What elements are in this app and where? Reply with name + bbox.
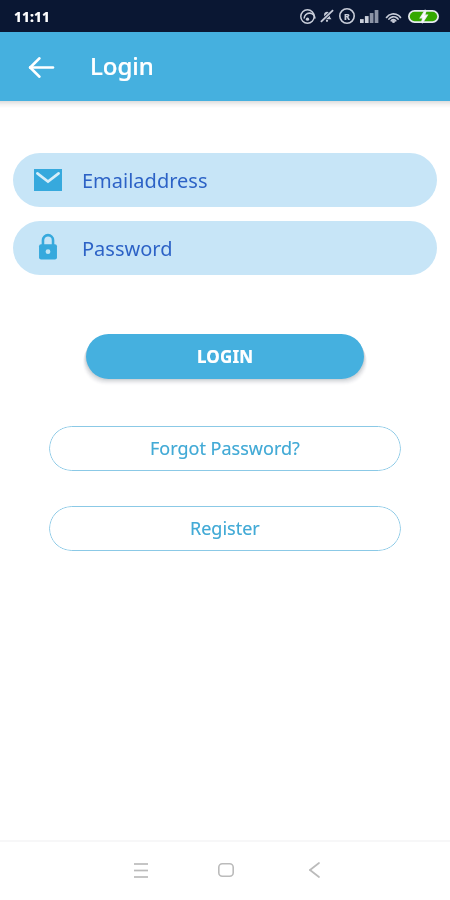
- staticText: Forgot Password?: [150, 436, 300, 461]
- button[interactable]: Home: [205, 849, 247, 891]
- button[interactable]: LOGIN: [86, 334, 364, 379]
- staticText: R: [344, 10, 350, 22]
- button[interactable]: Forgot Password?: [49, 426, 401, 471]
- button[interactable]: Recent apps: [120, 849, 162, 891]
- button[interactable]: Register: [49, 506, 401, 551]
- staticText: Login: [90, 49, 154, 82]
- button[interactable]: Password: [13, 221, 437, 275]
- button[interactable]: Emailaddress: [13, 153, 437, 207]
- staticText: Password: [82, 235, 173, 262]
- button[interactable]: Back: [293, 849, 335, 891]
- staticText: 11:11: [14, 7, 50, 26]
- staticText: LOGIN: [197, 345, 254, 368]
- button[interactable]: Back: [17, 43, 65, 91]
- staticText: Emailaddress: [82, 167, 208, 194]
- staticText: Register: [190, 516, 260, 541]
